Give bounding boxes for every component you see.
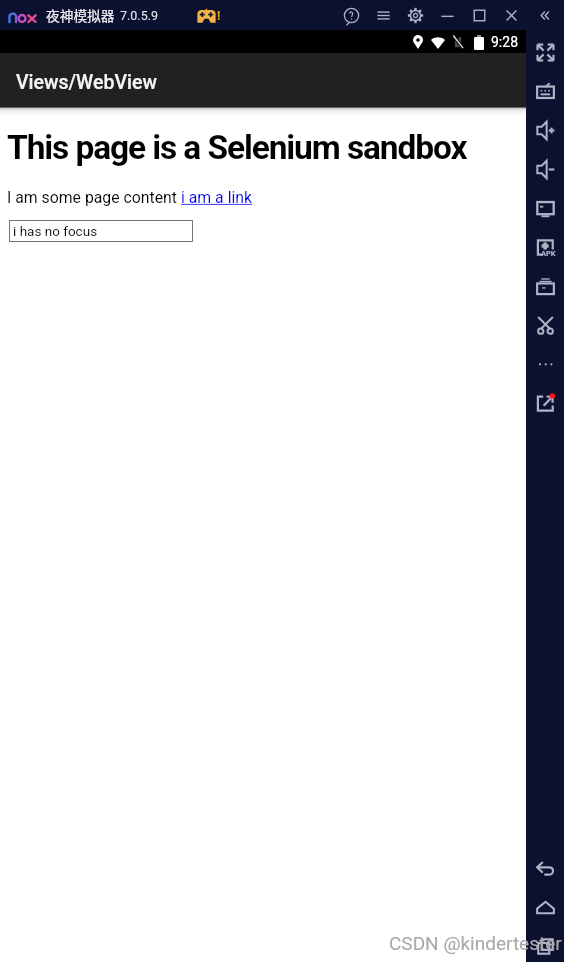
staticText: CSDN @kindertester [389,932,562,954]
button[interactable]: Open [526,384,564,423]
staticText: ! [217,9,221,23]
button[interactable]: Recents [526,927,564,962]
staticText: This page is a Selenium sandbox [7,128,467,167]
button[interactable]: More [526,345,564,384]
staticText: 夜神模拟器 [46,5,115,25]
button[interactable]: Home [526,888,564,927]
button[interactable]: Shared folder [526,267,564,306]
button[interactable]: Help [335,0,367,30]
button[interactable]: i am a link [181,188,253,207]
button[interactable]: Screen [526,189,564,228]
button[interactable]: Collapse [527,0,559,30]
button[interactable]: Close [495,0,527,30]
staticText: 7.0.5.9 [120,8,158,23]
button[interactable]: i has no focus [9,220,193,242]
staticText: APK [541,249,556,258]
button[interactable]: Screenshot [526,72,564,111]
button[interactable]: Cut [526,306,564,345]
button[interactable]: Settings [399,0,431,30]
staticText: Views/WebView [16,71,157,94]
staticText: I am some page content [7,188,181,207]
button[interactable]: Menu [367,0,399,30]
button[interactable]: Minimize [431,0,463,30]
staticText: i am a link [181,188,253,207]
staticText: i has no focus [13,223,98,239]
button[interactable]: Volume up [526,111,564,150]
staticText: 9:28 [491,34,518,50]
button[interactable]: Fullscreen [526,33,564,72]
button[interactable]: Install APK [526,228,564,267]
button[interactable]: Maximize [463,0,495,30]
button[interactable]: Volume down [526,150,564,189]
button[interactable]: Back [526,849,564,888]
